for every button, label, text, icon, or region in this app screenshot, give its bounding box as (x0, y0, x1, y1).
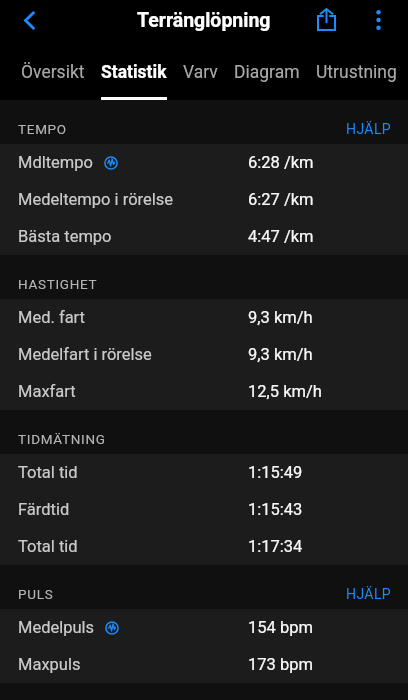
staticText: Översikt (21, 62, 85, 83)
button[interactable]: HJÄLP (334, 115, 408, 144)
button[interactable]: HJÄLP (334, 580, 408, 609)
staticText: 6:28 /km (248, 153, 314, 172)
button[interactable]: More options (356, 0, 400, 40)
staticText: 9,3 km/h (248, 308, 313, 327)
staticText: Varv (183, 62, 218, 83)
staticText: Färdtid (18, 500, 70, 519)
staticText: 1:17:34 (248, 537, 303, 556)
button[interactable]: Översikt (21, 48, 85, 97)
staticText: 1:15:43 (248, 500, 303, 519)
button[interactable]: Total tid (0, 528, 408, 565)
staticText: 12,5 km/h (248, 382, 322, 401)
button[interactable]: Statistik (101, 48, 167, 100)
staticText: Medelpuls (18, 618, 95, 637)
button[interactable]: Diagram (234, 48, 300, 97)
staticText: HJÄLP (346, 121, 392, 137)
staticText: HJÄLP (346, 586, 392, 602)
staticText: 9,3 km/h (248, 345, 313, 364)
staticText: TEMPO (18, 121, 67, 137)
button[interactable]: Medelfart i rörelse (0, 336, 408, 373)
staticText: Statistik (101, 62, 167, 83)
staticText: 4:47 /km (248, 227, 314, 246)
button[interactable]: Medelpuls (0, 609, 408, 646)
button[interactable]: Varv (183, 48, 218, 97)
staticText: Utrustning (316, 62, 397, 83)
button[interactable]: Total tid (0, 454, 408, 491)
staticText: Bästa tempo (18, 227, 112, 246)
staticText: PULS (18, 586, 54, 602)
button[interactable]: Share (304, 0, 348, 39)
staticText: Maxpuls (18, 655, 81, 674)
staticText: Terränglöpning (137, 9, 271, 32)
staticText: Maxfart (18, 382, 76, 401)
button[interactable]: Mdltempo (0, 144, 408, 181)
staticText: Diagram (234, 62, 300, 83)
staticText: HASTIGHET (18, 276, 98, 292)
button[interactable]: Maxpuls (0, 646, 408, 683)
button[interactable]: Back (8, 0, 51, 40)
staticText: Total tid (18, 463, 78, 482)
staticText: 6:27 /km (248, 190, 314, 209)
staticText: TIDMÄTNING (18, 431, 106, 447)
button[interactable]: Medeltempo i rörelse (0, 181, 408, 218)
staticText: 154 bpm (248, 618, 313, 637)
button[interactable]: Utrustning (316, 48, 397, 97)
button[interactable]: Maxfart (0, 373, 408, 410)
staticText: 173 bpm (248, 655, 313, 674)
staticText: Medelfart i rörelse (18, 345, 152, 364)
button[interactable]: Med. fart (0, 299, 408, 336)
staticText: Mdltempo (18, 153, 94, 172)
staticText: Med. fart (18, 308, 86, 327)
button[interactable]: Färdtid (0, 491, 408, 528)
button[interactable]: Bästa tempo (0, 218, 408, 255)
staticText: 1:15:49 (248, 463, 303, 482)
staticText: Medeltempo i rörelse (18, 190, 174, 209)
staticText: Total tid (18, 537, 78, 556)
